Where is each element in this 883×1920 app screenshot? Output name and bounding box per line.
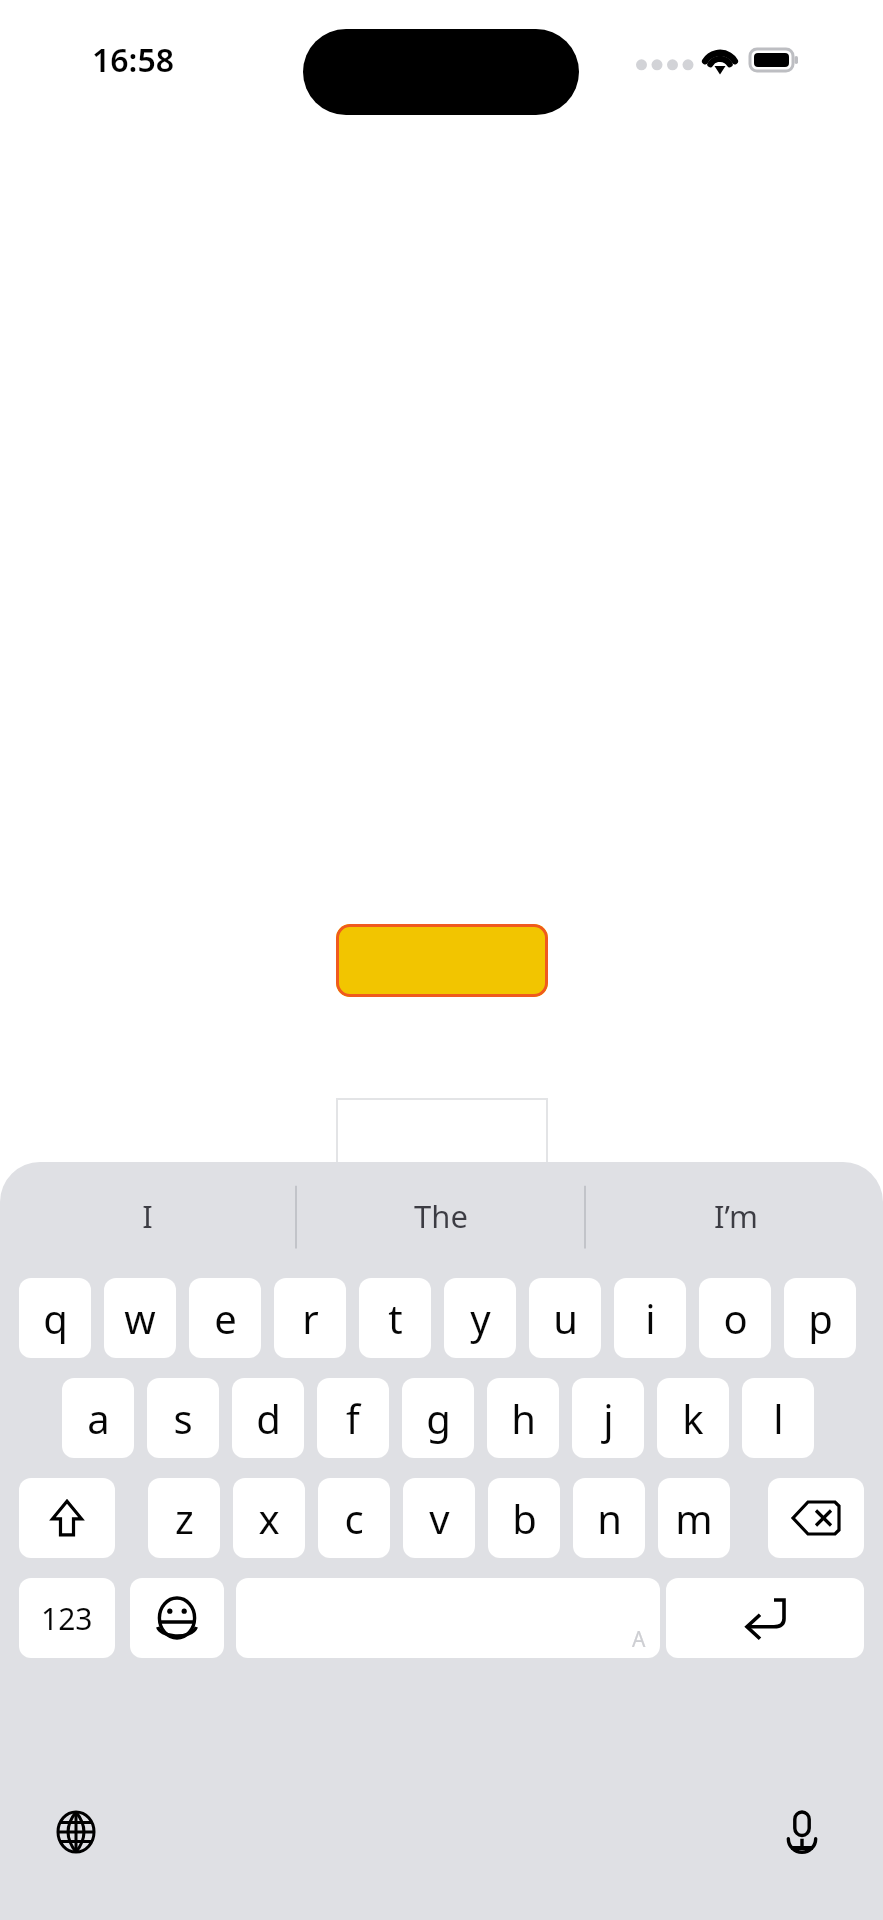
button[interactable]: l <box>742 1378 814 1458</box>
staticText: h <box>511 1391 536 1445</box>
button[interactable]: 123 <box>19 1578 115 1658</box>
staticText: e <box>214 1291 237 1345</box>
button[interactable]: e <box>189 1278 261 1358</box>
button[interactable]: Backspace <box>768 1478 864 1558</box>
button[interactable]: k <box>657 1378 729 1458</box>
staticText: n <box>597 1491 622 1545</box>
button[interactable]: Dictation <box>780 1810 824 1854</box>
staticText: l <box>773 1391 784 1445</box>
staticText: t <box>388 1291 403 1345</box>
button[interactable]: y <box>444 1278 516 1358</box>
staticText: I’m <box>714 1195 758 1237</box>
button[interactable]: h <box>487 1378 559 1458</box>
button[interactable]: o <box>699 1278 771 1358</box>
staticText: j <box>603 1391 614 1445</box>
button[interactable]: z <box>148 1478 220 1558</box>
staticText: i <box>645 1291 656 1345</box>
staticText: o <box>723 1291 748 1345</box>
staticText: The <box>414 1195 468 1237</box>
staticText: d <box>256 1391 281 1445</box>
button[interactable]: Return <box>666 1578 864 1658</box>
staticText: A <box>632 1625 646 1654</box>
staticText: r <box>302 1291 319 1345</box>
button[interactable]: i <box>614 1278 686 1358</box>
staticText: y <box>470 1291 491 1345</box>
staticText: k <box>682 1391 704 1445</box>
staticText: f <box>346 1391 360 1445</box>
button[interactable]: g <box>402 1378 474 1458</box>
button[interactable]: q <box>19 1278 91 1358</box>
staticText: p <box>808 1291 833 1345</box>
button[interactable]: d <box>232 1378 304 1458</box>
button[interactable]: n <box>573 1478 645 1558</box>
button[interactable]: b <box>488 1478 560 1558</box>
button[interactable]: m <box>658 1478 730 1558</box>
button[interactable]: j <box>572 1378 644 1458</box>
button[interactable]: r <box>274 1278 346 1358</box>
button[interactable]: Shift <box>19 1478 115 1558</box>
staticText: m <box>675 1491 713 1545</box>
button[interactable]: The <box>294 1162 588 1270</box>
button[interactable]: I’m <box>589 1162 883 1270</box>
button[interactable]: u <box>529 1278 601 1358</box>
staticText: w <box>124 1291 156 1345</box>
staticText: c <box>344 1491 364 1545</box>
staticText: a <box>87 1391 110 1445</box>
staticText: 16:58 <box>92 38 175 82</box>
staticText: g <box>426 1391 451 1445</box>
button[interactable]: Next keyboard <box>54 1810 98 1854</box>
button[interactable]: v <box>403 1478 475 1558</box>
staticText: I <box>142 1195 153 1237</box>
button[interactable]: x <box>233 1478 305 1558</box>
button[interactable] <box>336 924 548 997</box>
staticText: v <box>429 1491 450 1545</box>
button[interactable]: t <box>359 1278 431 1358</box>
button[interactable]: a <box>62 1378 134 1458</box>
button[interactable]: Emoji <box>130 1578 224 1658</box>
button[interactable]: c <box>318 1478 390 1558</box>
button[interactable]: I <box>0 1162 294 1270</box>
staticText: x <box>258 1491 280 1545</box>
staticText: u <box>553 1291 578 1345</box>
staticText: b <box>512 1491 537 1545</box>
button[interactable]: p <box>784 1278 856 1358</box>
staticText: s <box>173 1391 193 1445</box>
staticText: z <box>175 1491 194 1545</box>
button[interactable]: w <box>104 1278 176 1358</box>
staticText: q <box>43 1291 68 1345</box>
button[interactable]: s <box>147 1378 219 1458</box>
staticText: 123 <box>41 1598 93 1639</box>
button[interactable]: f <box>317 1378 389 1458</box>
